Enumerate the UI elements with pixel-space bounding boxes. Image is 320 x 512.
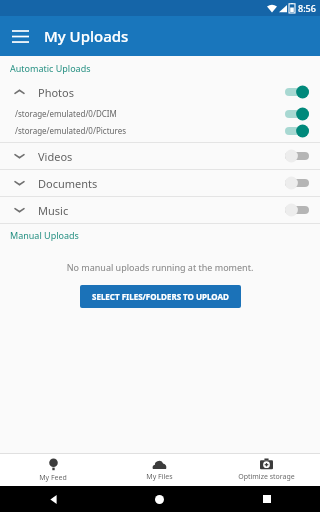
button[interactable]: Music	[0, 197, 320, 223]
button[interactable]: Videos	[0, 143, 320, 169]
staticText: Automatic Uploads	[10, 62, 91, 74]
button[interactable]: Off	[284, 149, 310, 163]
button[interactable]: On	[284, 85, 310, 99]
staticText: SELECT FILES/FOLDERS TO UPLOAD	[92, 291, 229, 302]
staticText: Photos	[38, 85, 75, 100]
staticText: /storage/emulated/0/DCIM	[15, 108, 117, 119]
button[interactable]: /storage/emulated/0/DCIM	[0, 105, 320, 122]
button[interactable]: Documents	[0, 170, 320, 196]
button[interactable]: SELECT FILES/FOLDERS TO UPLOAD	[80, 285, 241, 308]
staticText: My Uploads	[44, 26, 129, 46]
button[interactable]: My Files	[106, 454, 213, 486]
button[interactable]: On	[284, 124, 310, 138]
button[interactable]: Recent apps	[213, 486, 320, 512]
button[interactable]: Optimize storage	[213, 454, 320, 486]
button[interactable]: Back	[0, 486, 106, 512]
button[interactable]: Photos	[0, 79, 320, 105]
button[interactable]: My Feed	[0, 454, 106, 486]
button[interactable]: Open navigation menu	[0, 16, 40, 56]
staticText: My Files	[146, 472, 173, 482]
button[interactable]: Off	[284, 176, 310, 190]
staticText: Videos	[38, 149, 73, 164]
staticText: 8:56	[298, 2, 316, 14]
staticText: /storage/emulated/0/Pictures	[15, 125, 126, 136]
staticText: Manual Uploads	[10, 229, 79, 241]
button[interactable]: Off	[284, 203, 310, 217]
staticText: My Feed	[39, 473, 67, 483]
staticText: Optimize storage	[238, 472, 295, 482]
button[interactable]: Home	[106, 486, 213, 512]
staticText: Documents	[38, 176, 98, 191]
button[interactable]: On	[284, 107, 310, 121]
staticText: No manual uploads running at the moment.	[0, 261, 320, 273]
button[interactable]: /storage/emulated/0/Pictures	[0, 122, 320, 139]
staticText: Music	[38, 203, 69, 218]
